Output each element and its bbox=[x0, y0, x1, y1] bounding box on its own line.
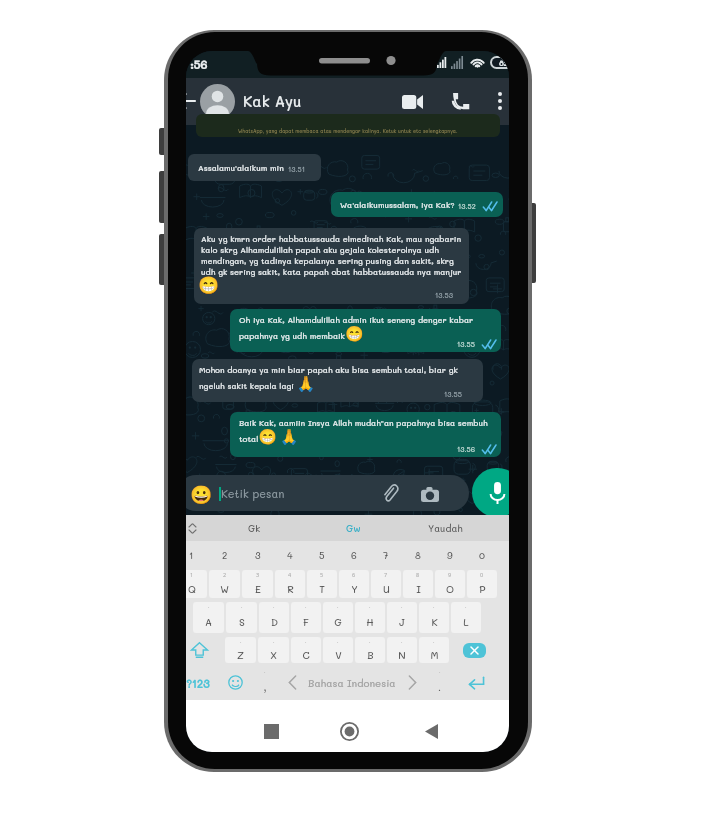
staticText: · bbox=[369, 638, 371, 645]
button[interactable]: · bbox=[387, 637, 417, 663]
button[interactable]: 5 bbox=[307, 570, 337, 598]
button[interactable]: · bbox=[225, 637, 256, 663]
button[interactable]: · bbox=[251, 667, 278, 698]
staticText: 5 bbox=[320, 571, 324, 578]
staticText: 0 bbox=[480, 571, 484, 578]
staticText: · bbox=[465, 603, 467, 610]
staticText: H bbox=[366, 615, 374, 628]
button[interactable]: Baik Kak, aamiin Insya Allah mudah"an pa… bbox=[230, 412, 501, 457]
button[interactable]: 9 bbox=[435, 570, 465, 598]
button[interactable]: 4 bbox=[275, 570, 305, 598]
button[interactable]: Backspace bbox=[450, 635, 498, 665]
button[interactable]: 5 bbox=[306, 541, 338, 568]
button[interactable]: 3 bbox=[241, 541, 274, 568]
button[interactable]: Gw bbox=[327, 515, 379, 541]
staticText: Oh iya Kak, Alhamdulillah admin ikut sen… bbox=[239, 314, 490, 343]
button[interactable]: Back bbox=[417, 717, 445, 745]
staticText: 😀 bbox=[190, 484, 213, 505]
button[interactable]: · bbox=[419, 602, 449, 633]
button[interactable]: 6 bbox=[338, 541, 370, 568]
staticText: V bbox=[335, 648, 342, 661]
staticText: D bbox=[271, 615, 278, 628]
button[interactable]: 0 bbox=[467, 570, 497, 598]
button[interactable]: · bbox=[193, 602, 224, 633]
staticText: 8 bbox=[416, 571, 420, 578]
staticText: U bbox=[383, 582, 390, 595]
button[interactable]: 8 bbox=[402, 541, 434, 568]
button[interactable]: 2 bbox=[208, 541, 241, 568]
button[interactable]: · bbox=[426, 667, 453, 698]
staticText: WhatsApp, yang dapat membaca atau menden… bbox=[238, 128, 458, 135]
button[interactable]: Back bbox=[186, 90, 197, 112]
button[interactable]: 7 bbox=[370, 541, 402, 568]
button[interactable]: Kak Ayu bbox=[243, 91, 302, 110]
staticText: Assalamu'alaikum min bbox=[198, 162, 284, 173]
staticText: Baik Kak, aamiin Insya Allah mudah"an pa… bbox=[239, 417, 490, 446]
button[interactable]: Attach bbox=[380, 483, 400, 503]
button[interactable]: Bahasa Indonesia bbox=[305, 665, 399, 700]
staticText: 3 bbox=[256, 571, 260, 578]
button[interactable]: Wa'alaikumussalam, iya Kak? bbox=[331, 192, 503, 217]
staticText: Ketik pesan bbox=[221, 486, 285, 500]
button[interactable]: Recents bbox=[257, 717, 285, 745]
staticText: Y bbox=[351, 582, 358, 595]
button[interactable]: Assalamu'alaikum min bbox=[188, 154, 321, 181]
staticText: W bbox=[220, 582, 229, 595]
button[interactable]: · bbox=[226, 602, 257, 633]
button[interactable]: Previous language bbox=[279, 665, 305, 700]
staticText: Gk bbox=[248, 522, 261, 534]
button[interactable]: · bbox=[355, 637, 385, 663]
button[interactable]: Mohon doanya ya min biar papah aku bisa … bbox=[192, 359, 483, 402]
button[interactable]: · bbox=[323, 602, 353, 633]
button[interactable]: 6 bbox=[339, 570, 369, 598]
button[interactable]: 7 bbox=[371, 570, 401, 598]
button[interactable]: 0 bbox=[466, 541, 498, 568]
button[interactable]: · bbox=[258, 637, 289, 663]
button[interactable]: 3 bbox=[242, 570, 273, 598]
staticText: · bbox=[305, 603, 307, 610]
button[interactable]: · bbox=[291, 637, 321, 663]
button[interactable]: 1 bbox=[186, 570, 207, 598]
button[interactable]: Enter bbox=[454, 665, 498, 700]
button[interactable]: Voice message bbox=[472, 468, 509, 517]
button[interactable]: Video call bbox=[400, 90, 424, 114]
button[interactable]: · bbox=[387, 602, 417, 633]
button[interactable]: · bbox=[451, 602, 481, 633]
staticText: Yaudah bbox=[428, 522, 463, 534]
button[interactable]: ?123 bbox=[186, 665, 220, 700]
button[interactable]: Camera bbox=[420, 484, 440, 504]
button[interactable]: Profile photo bbox=[200, 84, 235, 119]
button[interactable]: Next language bbox=[399, 665, 425, 700]
button[interactable]: Shift bbox=[186, 635, 224, 665]
staticText: · bbox=[273, 638, 275, 645]
button[interactable]: Emoji bbox=[220, 665, 250, 700]
staticText: · bbox=[337, 638, 339, 645]
staticText: 5 bbox=[319, 549, 325, 561]
button[interactable]: Home bbox=[334, 716, 364, 746]
button[interactable]: · bbox=[419, 637, 449, 663]
button[interactable]: · bbox=[291, 602, 321, 633]
button[interactable]: 4 bbox=[274, 541, 306, 568]
button[interactable]: 1 bbox=[186, 541, 208, 568]
staticText: 82 bbox=[499, 58, 508, 67]
button[interactable]: · bbox=[323, 637, 353, 663]
staticText: I bbox=[416, 582, 421, 595]
staticText: P bbox=[479, 582, 486, 595]
staticText: K bbox=[431, 615, 438, 628]
button[interactable]: Oh iya Kak, Alhamdulillah admin ikut sen… bbox=[230, 309, 501, 352]
button[interactable]: 2 bbox=[209, 570, 240, 598]
button[interactable]: Yaudah bbox=[414, 515, 476, 541]
button[interactable]: Call bbox=[449, 89, 473, 113]
button[interactable]: · bbox=[355, 602, 385, 633]
button[interactable]: More options bbox=[489, 90, 509, 112]
button[interactable]: Aku yg kmrn order habbatussauda elmedina… bbox=[194, 228, 469, 304]
button[interactable]: 8 bbox=[403, 570, 433, 598]
button[interactable]: 9 bbox=[434, 541, 466, 568]
button[interactable]: Gk bbox=[228, 515, 280, 541]
staticText: X bbox=[270, 648, 277, 661]
staticText: C bbox=[302, 648, 310, 661]
button[interactable]: 😀 bbox=[186, 475, 469, 511]
button[interactable]: · bbox=[259, 602, 289, 633]
staticText: Bahasa Indonesia bbox=[308, 676, 396, 689]
staticText: · bbox=[401, 603, 403, 610]
